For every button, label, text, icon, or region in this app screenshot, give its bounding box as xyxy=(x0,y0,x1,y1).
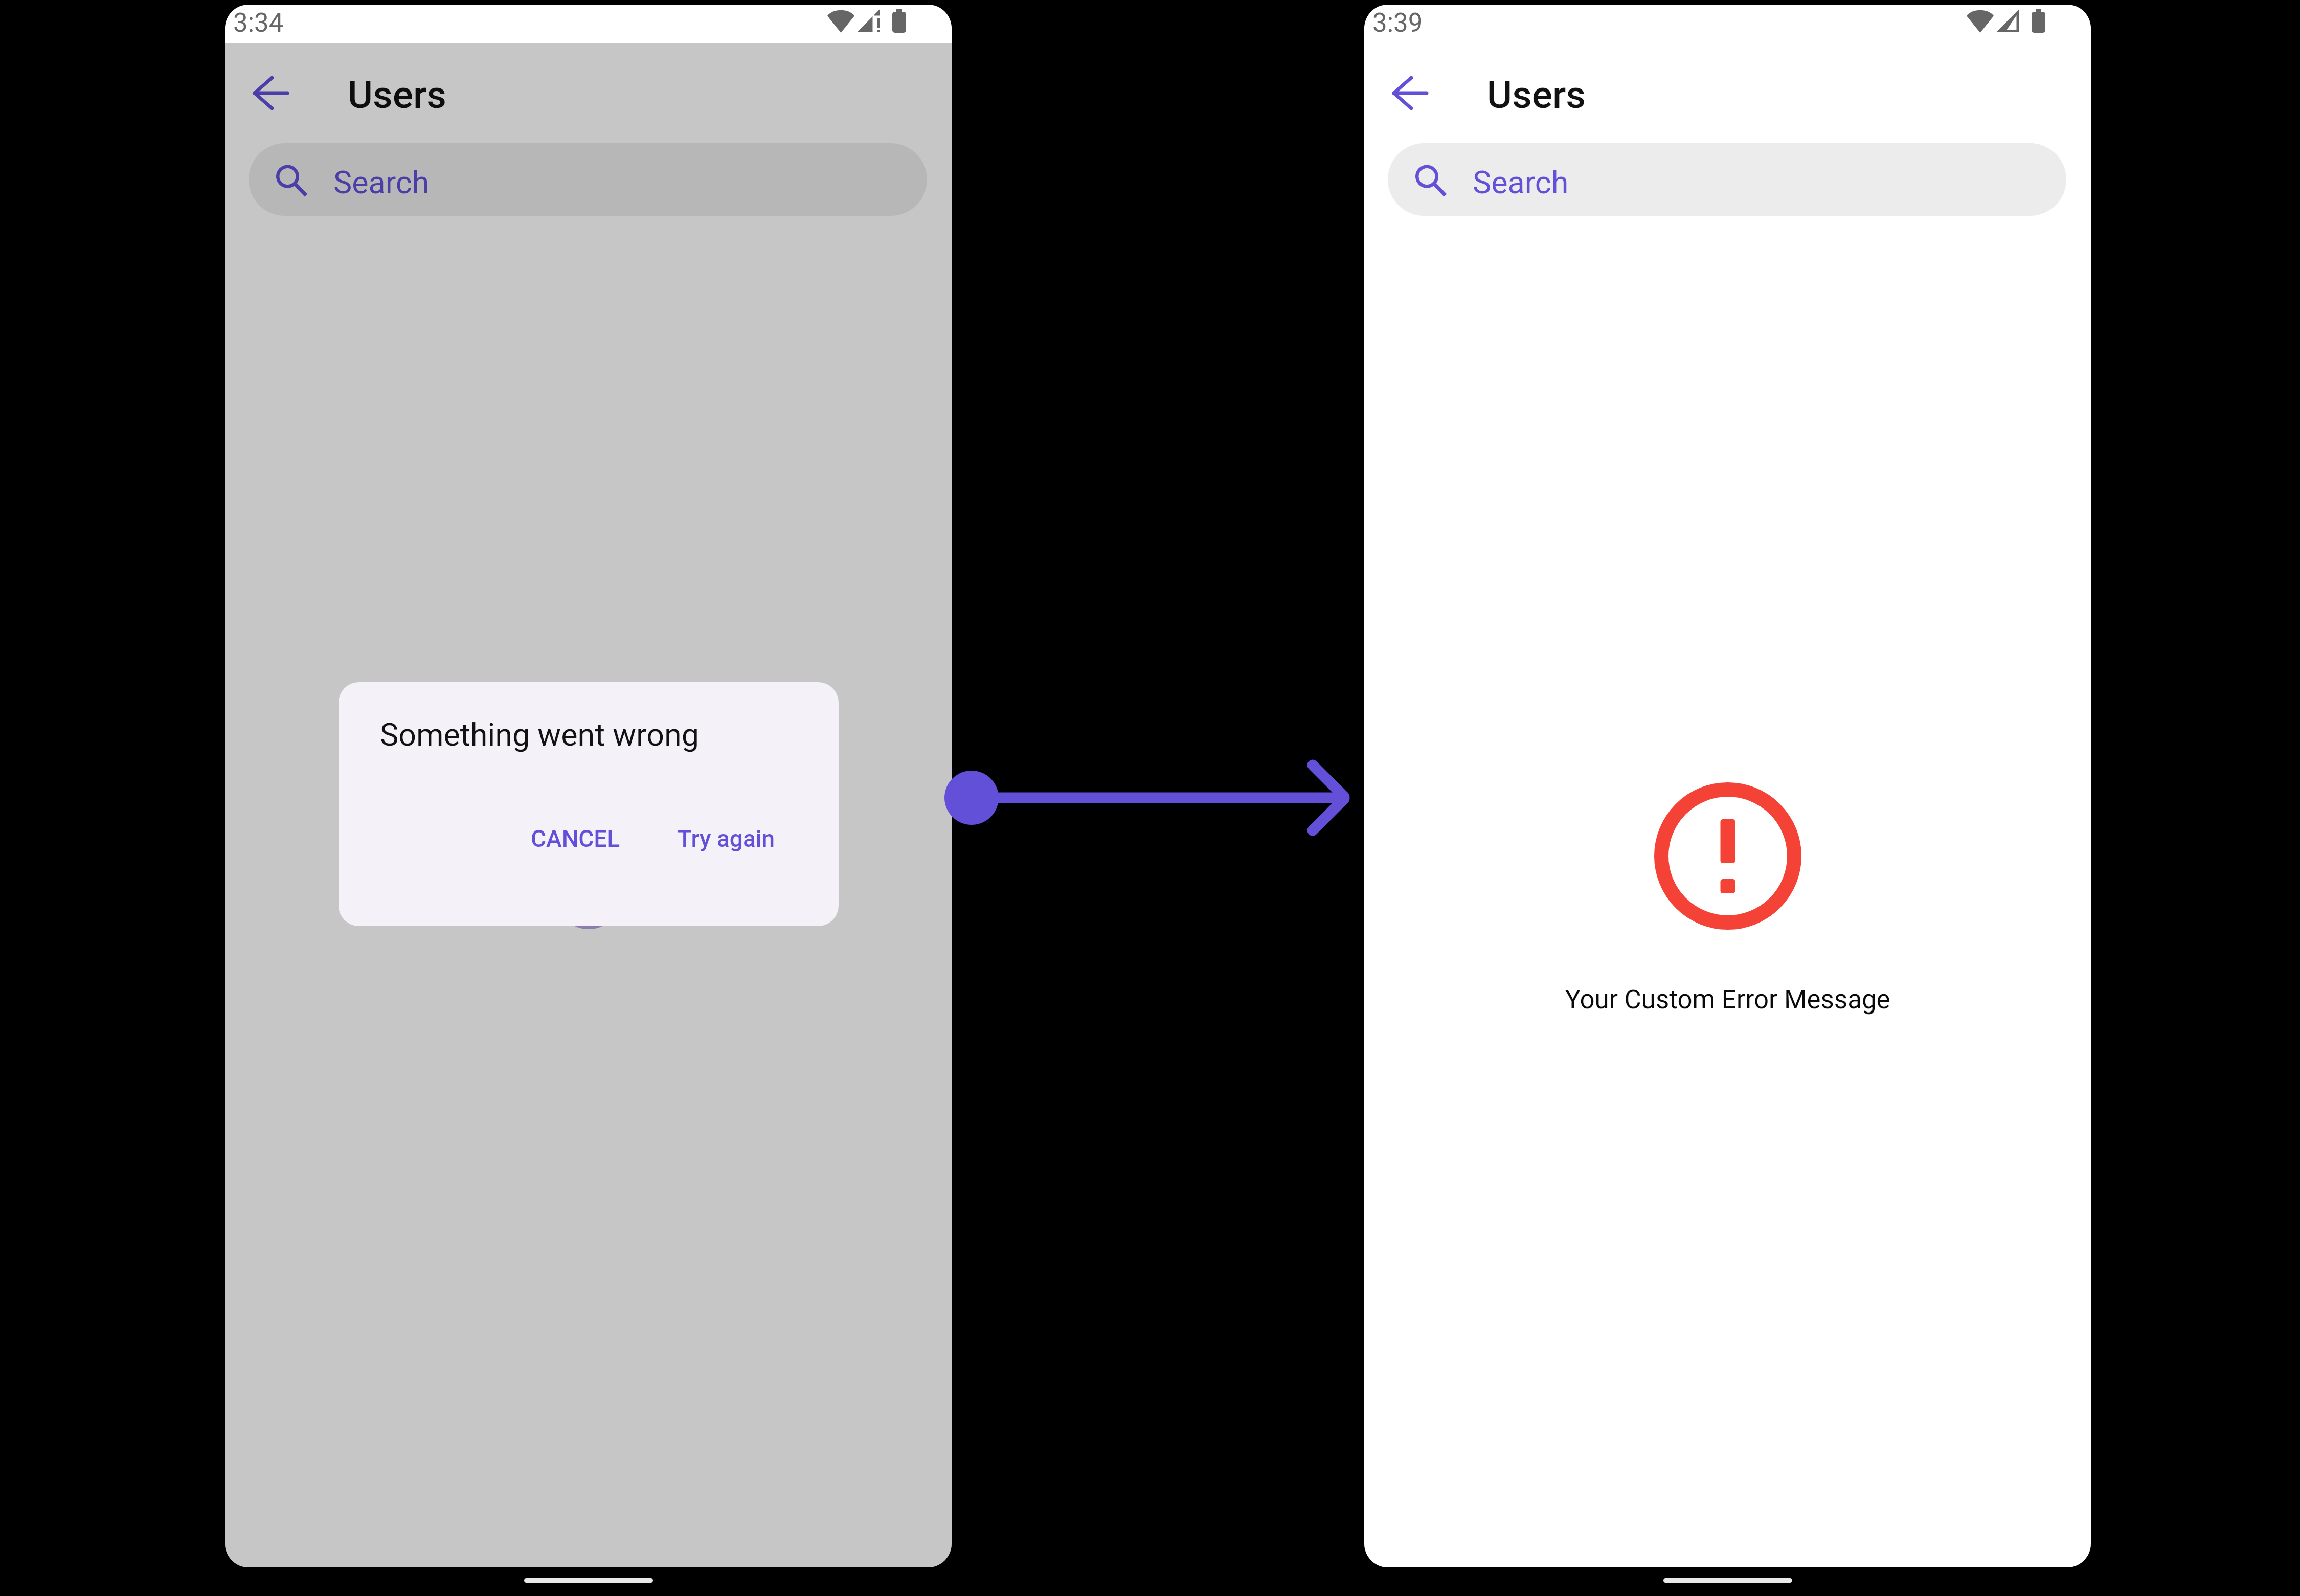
button[interactable]: Back xyxy=(1385,68,1437,120)
staticText: Search xyxy=(333,164,430,200)
button[interactable]: Search xyxy=(249,143,927,216)
staticText: CANCEL xyxy=(531,825,620,852)
staticText: 3:34 xyxy=(233,8,284,38)
button[interactable]: Try again xyxy=(667,817,785,861)
staticText: Users xyxy=(348,72,447,117)
staticText: Something went wrong xyxy=(380,716,699,753)
staticText: Search xyxy=(1473,164,1569,200)
staticText: Try again xyxy=(678,825,775,852)
other: Error xyxy=(1654,782,1801,930)
staticText: Your Custom Error Message xyxy=(1364,984,2091,1015)
staticText: 3:39 xyxy=(1372,8,1423,38)
button[interactable]: Search xyxy=(1388,143,2066,216)
staticText: Users xyxy=(1487,72,1586,117)
button[interactable]: CANCEL xyxy=(521,817,630,861)
button[interactable]: Back xyxy=(245,68,298,120)
